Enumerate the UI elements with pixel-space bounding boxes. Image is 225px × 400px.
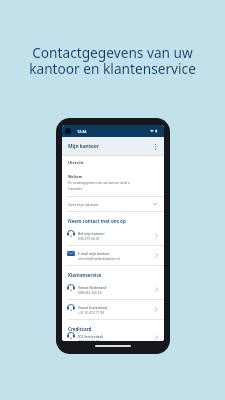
staticText: De contactgegevens van uw kantoor vindt … <box>68 181 134 190</box>
staticText: Vanuit buitenland <box>78 305 107 310</box>
staticText: Welkom <box>68 174 83 179</box>
staticText: 030 275 04 30 <box>78 236 100 240</box>
staticText: ICS Servicedesk <box>78 334 104 339</box>
staticText: Vanuit Nederland <box>78 285 107 290</box>
staticText: Mijn kantoor <box>68 143 99 150</box>
staticText: Bel mijn kantoor <box>78 231 105 236</box>
button[interactable]: Bel mijn kantoor <box>62 226 164 245</box>
staticText: utrecht@handelsbanken.nl <box>78 256 120 260</box>
staticText: Contactgegevens van uw kantoor en klante… <box>6 43 219 78</box>
button[interactable]: Vanuit Nederland <box>62 280 164 299</box>
staticText: 12:34 <box>77 129 87 134</box>
button[interactable]: E-mail mijn kantoor <box>62 246 164 265</box>
button[interactable]: Vanuit buitenland <box>62 300 164 319</box>
staticText: Over mijn kantoor <box>68 202 99 207</box>
staticText: 0800-82 330 20 <box>78 290 102 294</box>
button[interactable]: ICS Servicedesk <box>62 334 164 341</box>
staticText: E-mail mijn kantoor <box>78 251 110 256</box>
staticText: +31 30 412 77 90 <box>78 310 105 314</box>
staticText: 020 660 03 00 <box>78 339 100 341</box>
staticText: Neem contact met ons op <box>68 218 126 224</box>
staticText: Creditcard <box>68 326 92 332</box>
button[interactable]: Over mijn kantoor <box>62 197 164 211</box>
button[interactable]: More options <box>151 142 160 151</box>
staticText: Klantenservice <box>68 272 102 278</box>
staticText: Utrecht <box>68 160 84 166</box>
